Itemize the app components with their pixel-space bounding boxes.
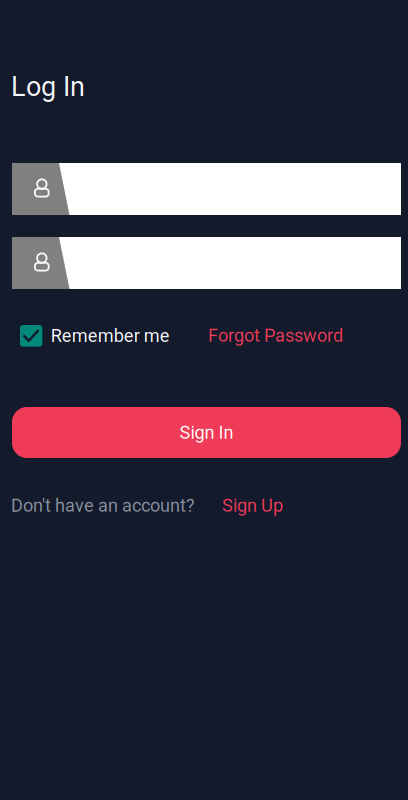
- staticText: Don't have an account?: [11, 495, 195, 516]
- staticText: Sign In: [179, 422, 233, 443]
- staticText: Log In: [11, 71, 85, 103]
- button[interactable]: Password: [12, 237, 401, 289]
- button[interactable]: Sign In: [12, 407, 401, 458]
- staticText: Forgot Password: [208, 325, 343, 346]
- button[interactable]: Remember me: [20, 325, 170, 347]
- button[interactable]: Forgot Password: [208, 325, 343, 346]
- staticText: Remember me: [51, 325, 170, 346]
- button[interactable]: Sign Up: [222, 495, 283, 516]
- button[interactable]: Username: [12, 163, 401, 215]
- staticText: Sign Up: [222, 495, 283, 516]
